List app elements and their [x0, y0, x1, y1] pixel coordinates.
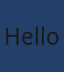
staticText: Hello — [4, 21, 60, 51]
